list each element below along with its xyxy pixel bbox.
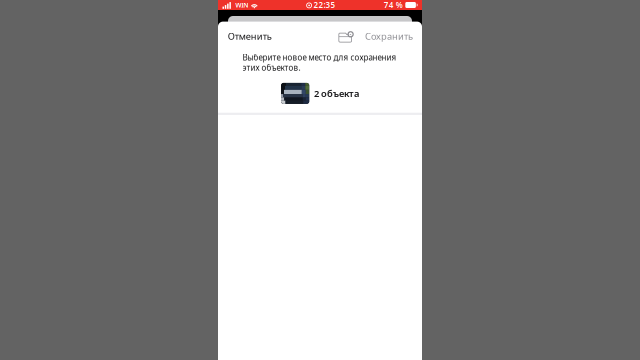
- staticText: WIN: [235, 1, 248, 9]
- staticText: 22:35: [314, 0, 336, 10]
- staticText: Сохранить: [365, 30, 413, 42]
- staticText: 74 %: [384, 0, 403, 10]
- button[interactable]: 2 объекта: [281, 73, 359, 104]
- button[interactable]: Новая папка: [334, 26, 354, 46]
- staticText: Выберите новое место для сохранения этих…: [242, 52, 396, 73]
- staticText: 2 объекта: [314, 87, 359, 100]
- button[interactable]: Сохранить: [365, 26, 413, 46]
- button[interactable]: Отменить: [228, 26, 272, 46]
- staticText: Отменить: [228, 30, 272, 42]
